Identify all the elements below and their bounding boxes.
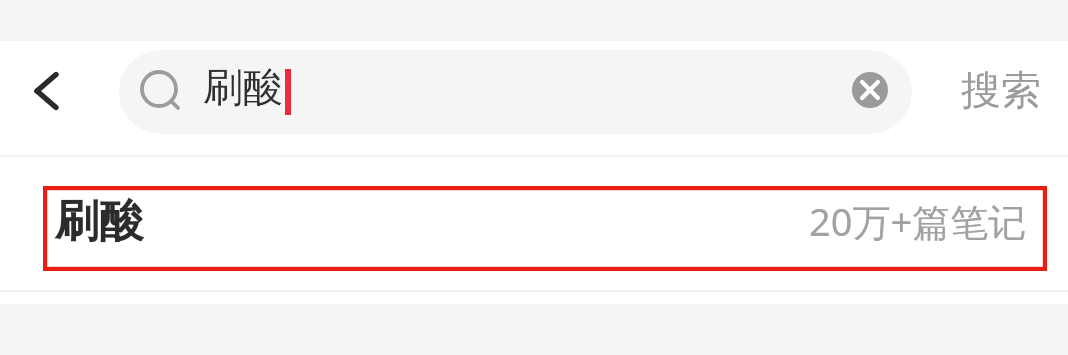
button[interactable]: Clear text <box>835 55 905 125</box>
button[interactable]: Back <box>12 55 84 127</box>
staticText: 搜索 <box>961 65 1041 115</box>
staticText: 刷酸 <box>55 194 143 249</box>
staticText: 20万+篇笔记 <box>809 195 1027 247</box>
button[interactable]: 刷酸 <box>119 50 912 134</box>
button[interactable]: 搜索 <box>941 61 1068 135</box>
button[interactable]: 刷酸 <box>0 157 1068 290</box>
staticText: 刷酸 <box>203 62 283 112</box>
